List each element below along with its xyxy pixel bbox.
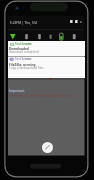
staticText: download completed <box>9 50 39 54</box>
button[interactable] <box>8 57 85 78</box>
staticText: - now <box>23 57 31 61</box>
staticText: Downloaded <box>9 47 29 51</box>
staticText: FileZilla: running <box>9 63 36 67</box>
staticText: Test Service <box>15 57 32 61</box>
staticText: 5:23PM | Thu, 5/4 <box>10 21 37 25</box>
staticText: - now <box>23 42 31 46</box>
button[interactable] <box>8 41 85 56</box>
button[interactable] <box>42 142 53 153</box>
staticText: Test Service <box>15 42 32 46</box>
staticText: Thanks so much for downloading Tasker! E… <box>9 94 75 98</box>
staticText: Copy urls/download files <box>9 66 44 70</box>
staticText: Important <box>9 89 25 93</box>
